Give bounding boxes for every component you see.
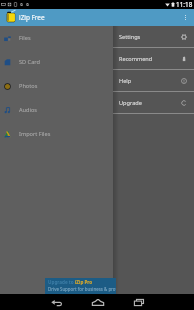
button[interactable]: Help — [112, 70, 194, 91]
staticText: Audios — [19, 106, 37, 114]
staticText: Upgrade — [119, 99, 142, 107]
staticText: Photos — [19, 82, 38, 90]
button[interactable]: Home — [87, 294, 109, 310]
button[interactable]: SD Card — [0, 50, 113, 74]
button[interactable]: Import Files — [0, 122, 113, 146]
staticText: Import Files — [19, 130, 51, 138]
staticText: Recommend — [119, 55, 153, 63]
staticText: Upgrade to — [48, 279, 75, 285]
button[interactable]: Recommend — [112, 48, 194, 69]
staticText: Help — [119, 77, 132, 85]
button[interactable]: Upgrade to — [45, 278, 116, 294]
staticText: iZip Free — [19, 13, 45, 22]
button[interactable]: Settings — [112, 26, 194, 47]
staticText: Files — [19, 34, 31, 42]
staticText: SD Card — [19, 58, 40, 66]
button[interactable]: Recents — [128, 294, 150, 310]
staticText: Settings — [119, 33, 141, 41]
button[interactable]: Audios — [0, 98, 113, 122]
button[interactable]: Upgrade — [112, 92, 194, 113]
button[interactable]: Back — [45, 294, 67, 310]
staticText: Drive Support for business & professiona… — [48, 286, 116, 292]
staticText: 11:18 — [176, 0, 193, 9]
button[interactable]: More options — [177, 9, 194, 26]
button[interactable]: Photos — [0, 74, 113, 98]
staticText: iZip Pro — [75, 279, 93, 285]
button[interactable]: Files — [0, 26, 113, 50]
